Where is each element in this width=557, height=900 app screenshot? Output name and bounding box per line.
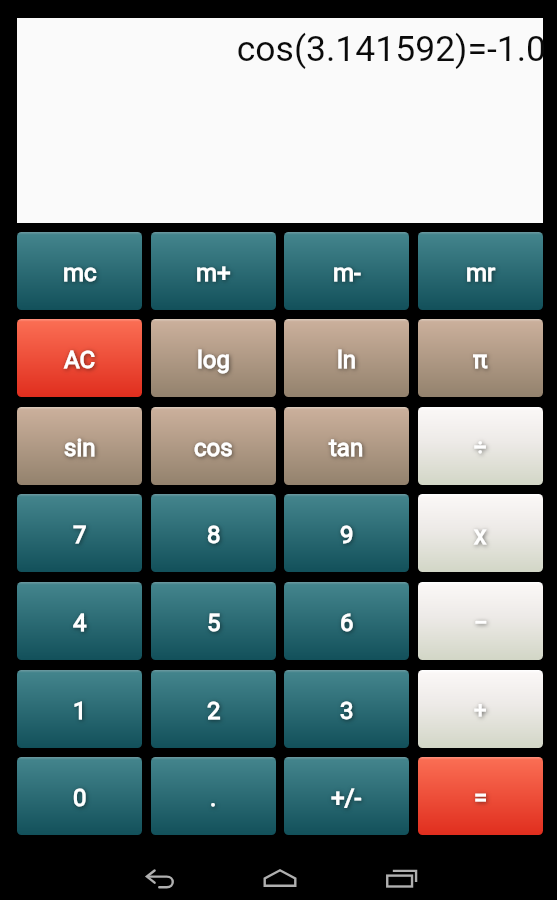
staticText: − [474,609,488,637]
staticText: 5 [207,609,221,637]
staticText: 8 [207,521,221,549]
staticText: mc [63,259,97,287]
button[interactable]: 2 [151,670,276,748]
button[interactable]: tan [284,407,409,485]
staticText: 0 [73,784,87,812]
button[interactable]: m- [284,232,409,310]
staticText: . [210,784,217,812]
staticText: tan [329,434,364,462]
button[interactable]: ÷ [418,407,543,485]
staticText: m- [333,259,361,287]
button[interactable]: . [151,757,276,835]
staticText: AC [64,346,96,374]
button[interactable]: mc [17,232,142,310]
button[interactable]: ln [284,319,409,397]
staticText: π [473,346,488,374]
button[interactable]: cos [151,407,276,485]
staticText: 7 [73,521,87,549]
button[interactable]: π [418,319,543,397]
staticText: + [474,698,487,724]
staticText: 9 [340,521,354,549]
button[interactable]: Recent apps [371,856,431,900]
staticText: 3 [340,697,354,725]
button[interactable]: 4 [17,582,142,660]
button[interactable]: Back [130,856,190,900]
staticText: 2 [207,697,221,725]
button[interactable]: 0 [17,757,142,835]
button[interactable]: x [418,494,543,572]
button[interactable]: m+ [151,232,276,310]
staticText: m+ [196,259,231,287]
staticText: cos [194,434,233,462]
staticText: mr [466,259,496,287]
staticText: ln [337,346,357,374]
button[interactable]: + [418,670,543,748]
staticText: = [474,784,488,812]
button[interactable]: 1 [17,670,142,748]
button[interactable]: − [418,582,543,660]
button[interactable]: 8 [151,494,276,572]
button[interactable]: 3 [284,670,409,748]
button[interactable]: 9 [284,494,409,572]
staticText: cos(3.141592)=-1.0 [236,28,546,70]
button[interactable]: +/- [284,757,409,835]
staticText: log [197,346,230,374]
staticText: 6 [340,609,354,637]
staticText: sin [64,434,96,462]
staticText: x [474,521,487,550]
staticText: ÷ [474,435,487,461]
button[interactable]: log [151,319,276,397]
button[interactable]: cos(3.141592)=-1.0 [17,18,543,223]
button[interactable]: mr [418,232,543,310]
button[interactable]: sin [17,407,142,485]
button[interactable]: = [418,757,543,835]
button[interactable]: Home [250,856,310,900]
button[interactable]: 5 [151,582,276,660]
button[interactable]: 6 [284,582,409,660]
button[interactable]: AC [17,319,142,397]
button[interactable]: 7 [17,494,142,572]
staticText: 1 [73,697,87,725]
staticText: +/- [331,784,362,812]
staticText: 4 [73,609,87,637]
